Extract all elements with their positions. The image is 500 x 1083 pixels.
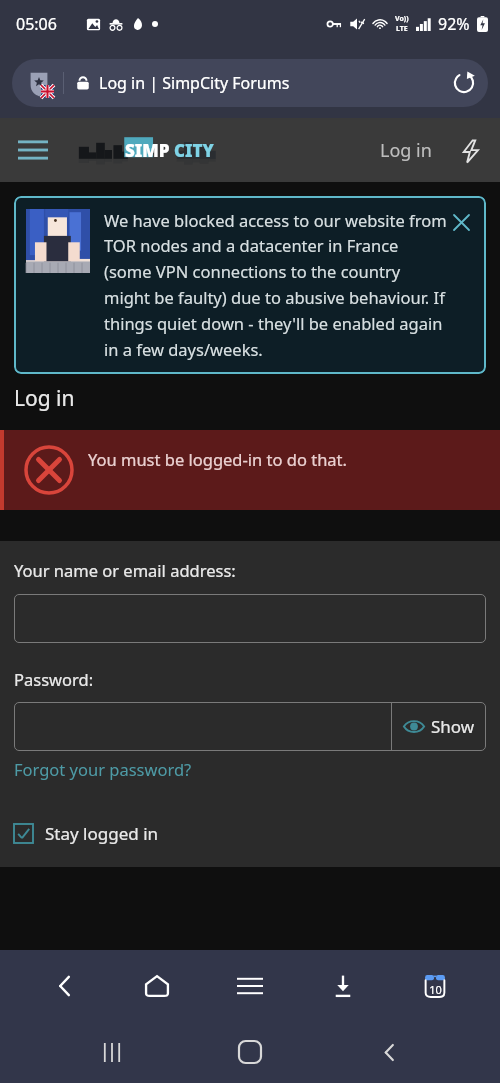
staticText: 92% (438, 13, 470, 35)
button[interactable]: Password field (14, 702, 391, 751)
staticText: LTE (396, 24, 408, 34)
button[interactable]: Tabs, 10 open (407, 958, 463, 1014)
staticText: You must be logged-in to do that. (88, 448, 347, 470)
staticText: Stay logged in (45, 822, 159, 845)
staticText: Vo)) (395, 14, 409, 24)
button[interactable]: Recents (85, 1025, 139, 1079)
button[interactable]: Log in | SimpCity Forums (12, 59, 488, 107)
button[interactable]: Downloads (315, 958, 371, 1014)
staticText: We have blocked access to our website fr… (104, 209, 448, 361)
button[interactable]: Log in (372, 130, 440, 171)
button[interactable]: Notifications (452, 133, 488, 169)
button[interactable]: Stay logged in (14, 822, 159, 845)
button[interactable]: Dismiss notice (448, 209, 474, 235)
button[interactable]: SimpCity home (76, 130, 220, 170)
staticText: SIMP (125, 139, 170, 162)
button[interactable]: Home (129, 958, 185, 1014)
staticText: 10 (429, 982, 442, 997)
staticText: Forgot your password? (14, 758, 192, 780)
staticText: Show (431, 715, 475, 738)
button[interactable]: Menu (12, 129, 54, 171)
button[interactable]: Home (223, 1025, 277, 1079)
staticText: Log in (14, 384, 75, 413)
button[interactable]: Forgot your password? (14, 758, 192, 780)
button[interactable]: Name or email field (14, 594, 486, 643)
staticText: Log in | SimpCity Forums (99, 72, 290, 94)
staticText: Password: (14, 668, 94, 690)
staticText: Your name or email address: (14, 559, 236, 581)
staticText: 05:06 (16, 13, 57, 35)
staticText: Log in (380, 138, 432, 163)
button[interactable]: Show (392, 702, 486, 751)
staticText: CITY (174, 139, 214, 162)
button[interactable]: Browser menu (222, 958, 278, 1014)
button[interactable]: Reload (444, 63, 484, 103)
button[interactable]: Back (37, 958, 93, 1014)
button[interactable]: Back (362, 1025, 416, 1079)
